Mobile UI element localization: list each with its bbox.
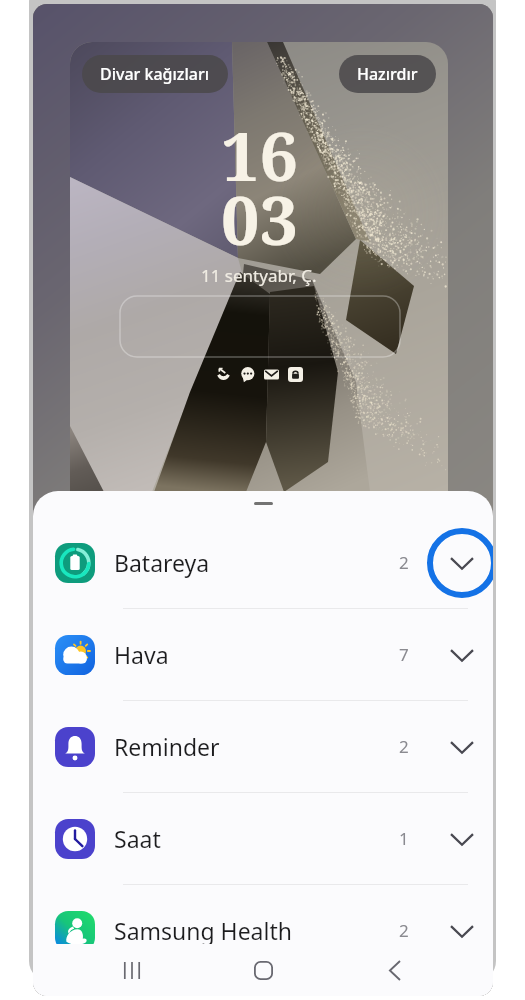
staticText: 03 xyxy=(221,172,298,265)
staticText: Divar kağızları xyxy=(100,63,210,85)
staticText: 2 xyxy=(399,919,409,942)
staticText: 7 xyxy=(399,643,409,666)
button[interactable]: Missed call xyxy=(216,367,231,382)
staticText: 11 sentyabr, Ç. xyxy=(201,264,317,287)
staticText: Hava xyxy=(114,639,169,670)
button[interactable]: Locked xyxy=(288,367,303,382)
button[interactable]: Back xyxy=(365,944,423,996)
button[interactable]: Saat xyxy=(33,793,493,885)
staticText: Reminder xyxy=(114,731,220,762)
button[interactable]: Batareya xyxy=(33,517,493,609)
button[interactable]: Messages xyxy=(240,367,255,382)
staticText: 2 xyxy=(399,551,409,574)
button[interactable]: Reminder xyxy=(33,701,493,793)
staticText: 1 xyxy=(399,827,409,850)
staticText: Samsung Health xyxy=(114,915,292,946)
button[interactable]: Email xyxy=(264,367,279,382)
staticText: Batareya xyxy=(114,547,210,578)
staticText: 2 xyxy=(399,735,409,758)
button[interactable]: Divar kağızları xyxy=(82,55,228,93)
button[interactable]: Recent apps xyxy=(103,944,161,996)
button[interactable]: Hava xyxy=(33,609,493,701)
button[interactable]: Home xyxy=(234,944,292,996)
staticText: 16 xyxy=(221,108,298,201)
button[interactable]: Hazırdır xyxy=(339,55,436,93)
staticText: Hazırdır xyxy=(357,63,418,85)
staticText: Saat xyxy=(114,823,161,854)
button[interactable]: Samsung Health xyxy=(33,885,493,977)
